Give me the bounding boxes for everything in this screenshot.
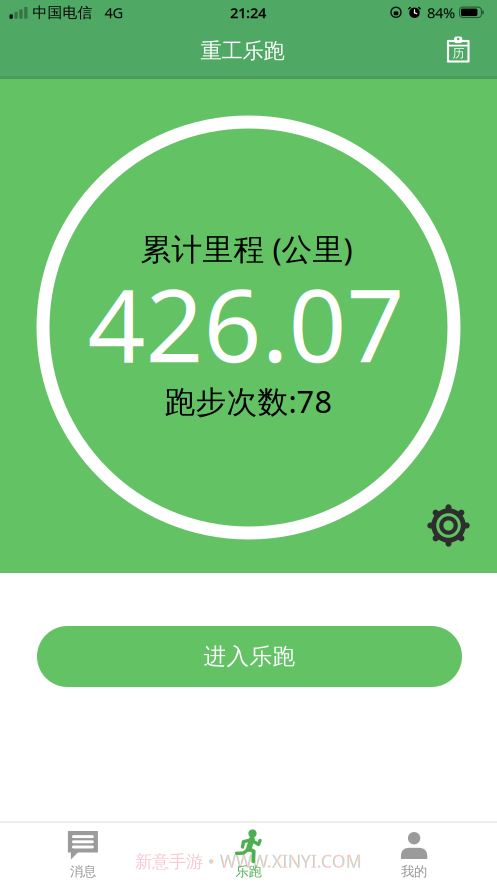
staticText: 我的 <box>401 863 427 880</box>
button[interactable]: 乐跑 <box>166 822 331 883</box>
staticText: 累计里程 (公里) <box>140 228 352 269</box>
staticText: 新意手游 • WWW.XINYI.COM <box>135 849 362 872</box>
staticText: 4G <box>104 3 123 22</box>
button[interactable]: 历 <box>438 30 478 70</box>
staticText: 跑步次数:78 <box>164 381 332 421</box>
staticText: 乐跑 <box>235 863 261 880</box>
staticText: 进入乐跑 <box>203 643 295 670</box>
button[interactable]: 进入乐跑 <box>37 626 462 687</box>
button[interactable]: 我的 <box>331 822 497 883</box>
staticText: 重工乐跑 <box>200 38 284 64</box>
staticText: 消息 <box>70 863 96 880</box>
staticText: 84% <box>427 3 455 22</box>
staticText: 21:24 <box>230 3 266 22</box>
staticText: 历 <box>452 46 464 61</box>
button[interactable] <box>424 501 472 549</box>
button[interactable]: 消息 <box>0 822 166 883</box>
staticText: 中国电信 <box>32 3 92 21</box>
staticText: 426.07 <box>87 256 404 390</box>
